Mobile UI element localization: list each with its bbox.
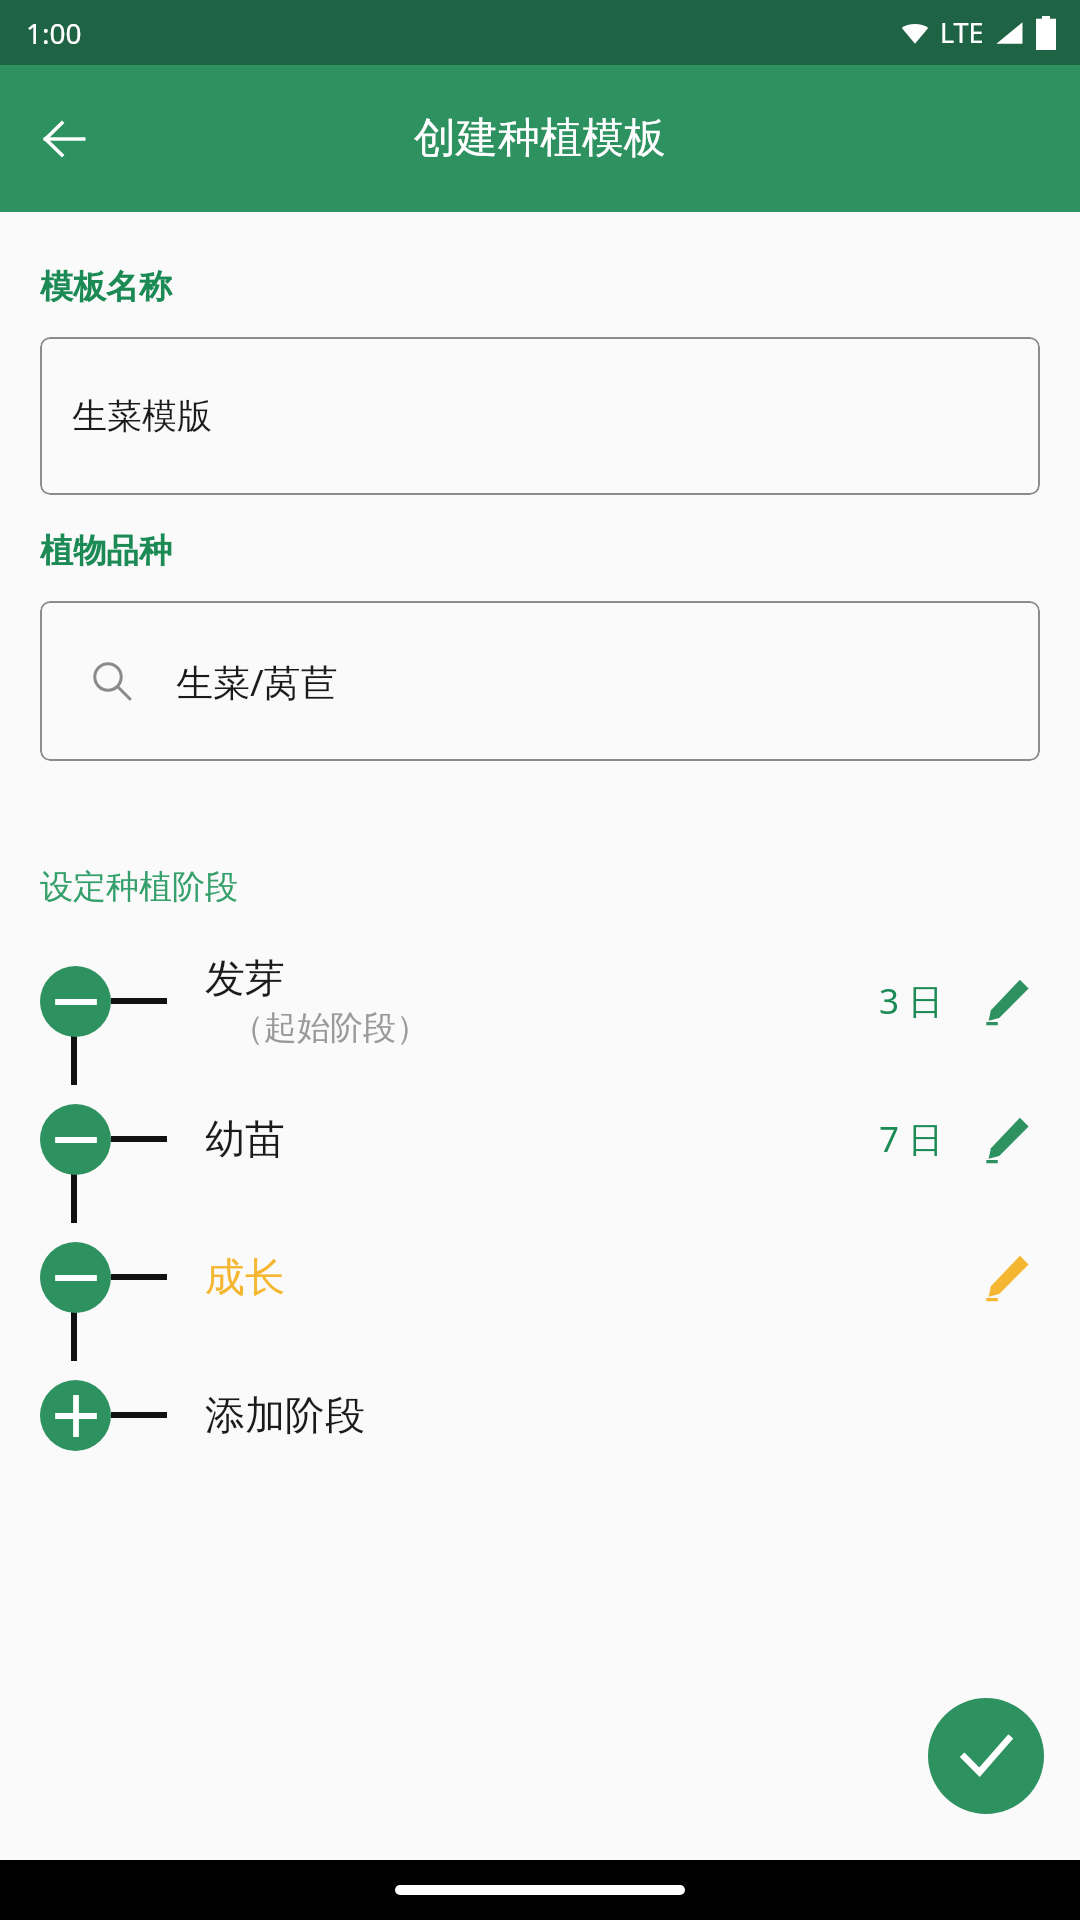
button[interactable]: 成长 xyxy=(40,1208,1040,1346)
staticText: 幼苗 xyxy=(205,1114,285,1164)
button[interactable]: Edit 幼苗 xyxy=(974,1106,1040,1172)
staticText: 植物品种 xyxy=(40,530,172,572)
staticText: LTE xyxy=(940,14,984,51)
button[interactable]: 添加阶段 xyxy=(40,1346,1040,1484)
button[interactable]: 生菜模版 xyxy=(40,337,1040,495)
button[interactable]: Edit 成长 xyxy=(974,1244,1040,1310)
button[interactable]: 生菜/莴苣 xyxy=(40,601,1040,761)
staticText: 生菜模版 xyxy=(72,394,212,438)
button[interactable]: 发芽 xyxy=(40,932,1040,1070)
staticText: （起始阶段） xyxy=(231,1007,429,1049)
staticText: 添加阶段 xyxy=(205,1390,365,1440)
staticText: 3 日 xyxy=(879,977,944,1025)
staticText: 成长 xyxy=(205,1252,285,1302)
staticText: 生菜/莴苣 xyxy=(176,656,338,707)
staticText: 1:00 xyxy=(26,14,82,52)
button[interactable]: 幼苗 xyxy=(40,1070,1040,1208)
staticText: 模板名称 xyxy=(40,266,172,308)
button[interactable]: Edit 发芽 xyxy=(974,968,1040,1034)
staticText: 设定种植阶段 xyxy=(40,866,238,908)
staticText: 创建种植模板 xyxy=(414,112,666,165)
button[interactable]: Confirm xyxy=(928,1698,1044,1814)
staticText: 7 日 xyxy=(879,1115,944,1163)
button[interactable]: Back xyxy=(24,99,104,179)
staticText: 发芽 xyxy=(205,953,285,1003)
